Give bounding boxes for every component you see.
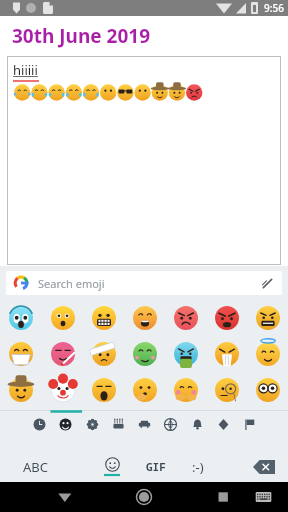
button[interactable]: Objects xyxy=(186,413,208,435)
button[interactable]: Travel xyxy=(133,413,155,435)
button[interactable]: Backspace xyxy=(240,451,288,482)
button[interactable]: Emoji xyxy=(0,372,42,408)
button[interactable]: Emoji xyxy=(0,300,42,336)
button[interactable]: ABC xyxy=(0,451,70,482)
button[interactable]: Emoji xyxy=(247,336,288,372)
button[interactable]: Activities xyxy=(159,413,181,435)
button[interactable]: Emoji xyxy=(247,300,288,336)
button[interactable]: Home xyxy=(72,482,144,512)
button[interactable]: Back xyxy=(0,482,72,512)
button[interactable]: Switch keyboard xyxy=(216,482,288,512)
staticText: GIF xyxy=(146,459,166,474)
button[interactable]: Recents xyxy=(144,482,216,512)
staticText: 9:56 xyxy=(264,1,284,15)
button[interactable]: Emoji xyxy=(165,300,206,336)
button[interactable]: Emoji xyxy=(165,372,206,408)
button[interactable]: Emoji xyxy=(83,372,124,408)
button[interactable]: Emoji xyxy=(206,300,247,336)
button[interactable]: Emoji xyxy=(206,372,247,408)
button[interactable]: GIF xyxy=(139,451,173,482)
button[interactable]: Nature xyxy=(81,413,103,435)
button[interactable]: Emoji xyxy=(124,372,165,408)
button[interactable]: Emoji xyxy=(83,300,124,336)
button[interactable]: Food xyxy=(107,413,129,435)
button[interactable]: hiiiii xyxy=(7,56,281,265)
button[interactable]: Smileys xyxy=(54,413,76,435)
staticText: Search emoji xyxy=(38,276,105,291)
button[interactable]: :-) xyxy=(181,451,215,482)
other: Handwriting input xyxy=(261,277,274,290)
button[interactable]: Emoji xyxy=(124,336,165,372)
button[interactable]: Emoji xyxy=(83,336,124,372)
button[interactable]: Emoji xyxy=(124,300,165,336)
button[interactable]: Search emoji xyxy=(6,271,282,295)
button[interactable]: Recent xyxy=(28,413,50,435)
button[interactable]: Emoji xyxy=(42,336,83,372)
button[interactable]: Emoji xyxy=(247,372,288,408)
staticText: ABC xyxy=(23,458,48,476)
button[interactable]: Emoji xyxy=(42,300,83,336)
button[interactable]: Flags xyxy=(238,413,260,435)
staticText: :-) xyxy=(192,458,204,476)
button[interactable]: Emoji xyxy=(206,336,247,372)
button[interactable]: Emoji xyxy=(165,336,206,372)
button[interactable]: Emoji xyxy=(0,336,42,372)
staticText: hiiiii xyxy=(13,61,38,79)
button[interactable]: Emoji keyboard xyxy=(95,451,129,482)
button[interactable]: Emoji xyxy=(42,372,83,408)
button[interactable]: Symbols xyxy=(212,413,234,435)
staticText: 30th June 2019 xyxy=(12,23,151,49)
